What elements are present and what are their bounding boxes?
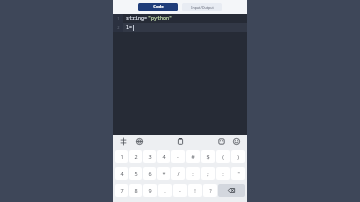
staticText: 5 (134, 170, 138, 177)
button[interactable]: ? (203, 184, 217, 197)
button[interactable]: Code (138, 3, 178, 11)
button[interactable]: 3 (143, 150, 156, 163)
button[interactable]: ; (201, 167, 215, 180)
button[interactable]: ! (188, 184, 202, 197)
button[interactable]: 8 (129, 184, 142, 197)
staticText: 1 (117, 16, 120, 21)
staticText: Input/Output (191, 5, 214, 10)
staticText: 4 (162, 153, 166, 160)
staticText: " (237, 170, 240, 177)
staticText: ! (194, 187, 196, 194)
button[interactable]: " (231, 167, 245, 180)
staticText: - (179, 187, 181, 194)
button[interactable]: Clipboard (176, 137, 185, 146)
staticText: : (222, 170, 224, 177)
button[interactable]: ( (216, 150, 230, 163)
staticText: "python" (148, 15, 173, 22)
button[interactable]: 4 (115, 167, 128, 180)
staticText: * (162, 170, 166, 177)
button[interactable]: - (173, 184, 187, 197)
staticText: / (177, 170, 180, 177)
button[interactable]: 7 (115, 184, 128, 197)
staticText: : (192, 170, 194, 177)
button[interactable]: - (171, 150, 185, 163)
button[interactable]: 1 (115, 150, 128, 163)
button[interactable]: 2 (129, 150, 142, 163)
button[interactable]: # (186, 150, 200, 163)
staticText: ) (237, 153, 239, 160)
staticText: 6 (148, 170, 152, 177)
staticText: 2 (117, 25, 120, 30)
button[interactable]: Language (135, 137, 144, 146)
staticText: ( (222, 153, 224, 160)
staticText: ; (207, 170, 209, 177)
staticText: $ (206, 153, 210, 160)
button[interactable]: Settings (119, 137, 128, 146)
button[interactable]: ) (231, 150, 245, 163)
staticText: 1 (120, 153, 124, 160)
button[interactable]: : (186, 167, 200, 180)
button[interactable]: Input/Output (182, 3, 222, 11)
staticText: 7 (120, 187, 124, 194)
staticText: string= (126, 15, 148, 22)
staticText: 9 (148, 187, 152, 194)
button[interactable]: 5 (129, 167, 142, 180)
button[interactable]: Sticker (217, 137, 226, 146)
staticText: Code (153, 4, 164, 10)
button[interactable]: . (158, 184, 172, 197)
staticText: 8 (134, 187, 138, 194)
button[interactable]: : (216, 167, 230, 180)
button[interactable]: 4 (157, 150, 170, 163)
button[interactable]: $ (201, 150, 215, 163)
button[interactable]: Backspace (218, 184, 245, 197)
staticText: - (177, 153, 179, 160)
button[interactable]: 6 (143, 167, 156, 180)
button[interactable]: 9 (143, 184, 157, 197)
staticText: 4 (120, 170, 124, 177)
staticText: 2 (134, 153, 138, 160)
staticText: ? (209, 187, 212, 194)
button[interactable]: / (171, 167, 185, 180)
staticText: # (191, 153, 195, 160)
staticText: 3 (148, 153, 152, 160)
button[interactable]: Emoji (232, 137, 241, 146)
staticText: . (164, 187, 166, 194)
button[interactable]: * (157, 167, 170, 180)
staticText: 1= (126, 24, 133, 31)
